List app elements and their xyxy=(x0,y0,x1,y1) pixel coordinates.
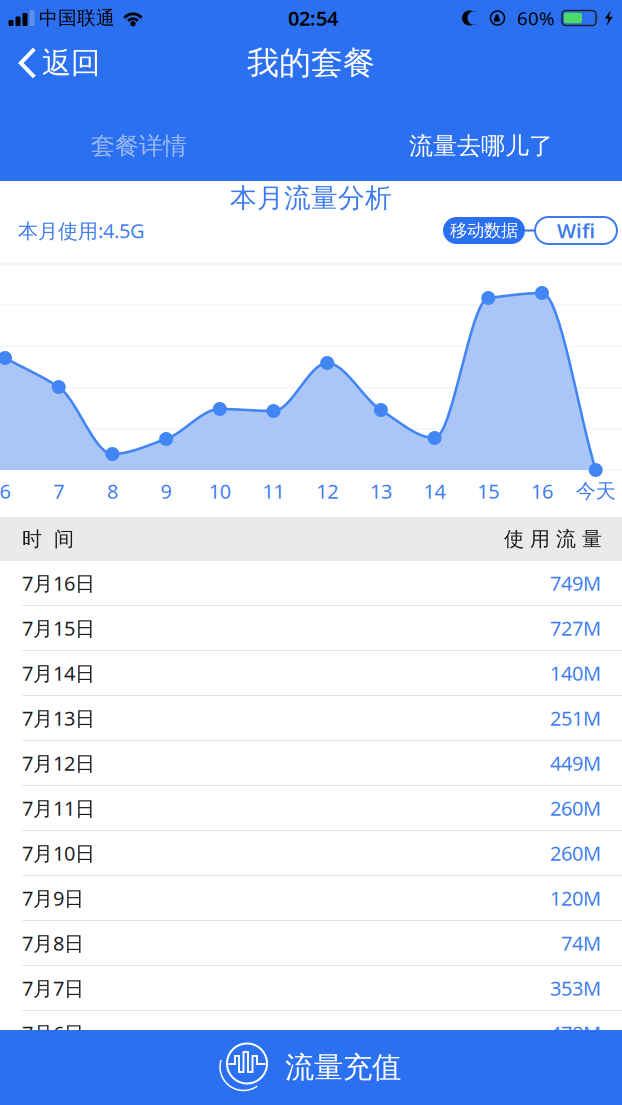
staticText: 流量充值 xyxy=(285,1049,401,1085)
staticText: 7月14日 xyxy=(22,660,95,686)
staticText: Wifi xyxy=(557,217,595,244)
staticText: 本月使用:4.5G xyxy=(18,217,145,244)
staticText: 8 xyxy=(107,478,118,504)
staticText: 02:54 xyxy=(288,5,338,31)
staticText: 15 xyxy=(477,478,499,504)
staticText: 251M xyxy=(550,705,601,731)
button[interactable]: 7月12日 xyxy=(0,741,622,786)
staticText: 13 xyxy=(370,478,392,504)
staticText: 我的套餐 xyxy=(247,43,375,83)
button[interactable]: 返回 xyxy=(0,36,114,90)
staticText: 7月9日 xyxy=(22,885,84,911)
staticText: 449M xyxy=(550,750,601,776)
staticText: 260M xyxy=(550,840,601,866)
staticText: 时 间 xyxy=(22,527,74,551)
staticText: 7月11日 xyxy=(22,795,95,821)
button[interactable]: 流量充值 xyxy=(0,1030,622,1105)
staticText: 7月13日 xyxy=(22,705,95,731)
staticText: 流量去哪儿了 xyxy=(409,131,553,161)
staticText: 中国联通 xyxy=(39,6,115,29)
staticText: 9 xyxy=(161,478,172,504)
staticText: 7月12日 xyxy=(22,750,95,776)
staticText: 10 xyxy=(209,478,231,504)
staticText: 260M xyxy=(550,795,601,821)
staticText: 478M xyxy=(550,1020,601,1046)
staticText: 60% xyxy=(517,6,555,30)
staticText: 移动数据 xyxy=(450,220,518,241)
button[interactable]: 7月14日 xyxy=(0,651,622,696)
button[interactable]: 套餐详情 xyxy=(0,120,278,172)
staticText: 749M xyxy=(550,570,601,596)
staticText: 7月6日 xyxy=(22,1020,84,1046)
button[interactable]: 移动数据 xyxy=(443,217,525,244)
button[interactable]: Wifi xyxy=(535,217,617,244)
staticText: 353M xyxy=(550,975,601,1001)
staticText: 返回 xyxy=(42,45,100,81)
staticText: 7月8日 xyxy=(22,930,84,956)
staticText: 140M xyxy=(550,660,601,686)
staticText: 7月10日 xyxy=(22,840,95,866)
button[interactable]: 7月16日 xyxy=(0,561,622,606)
button[interactable]: 7月10日 xyxy=(0,831,622,876)
staticText: 12 xyxy=(316,478,338,504)
button[interactable]: 7月13日 xyxy=(0,696,622,741)
staticText: 7 xyxy=(53,478,64,504)
button[interactable]: 7月9日 xyxy=(0,876,622,921)
button[interactable]: 7月6日 xyxy=(0,1011,622,1056)
staticText: 6 xyxy=(0,478,10,504)
staticText: 16 xyxy=(531,478,553,504)
staticText: 7月7日 xyxy=(22,975,84,1001)
staticText: 14 xyxy=(424,478,446,504)
staticText: 120M xyxy=(550,885,601,911)
staticText: 11 xyxy=(262,478,284,504)
staticText: 今天 xyxy=(576,479,616,503)
button[interactable]: 流量去哪儿了 xyxy=(341,120,621,172)
staticText: 74M xyxy=(561,930,601,956)
button[interactable]: 7月5日 xyxy=(0,1056,622,1101)
button[interactable]: 7月7日 xyxy=(0,966,622,1011)
button[interactable]: 7月8日 xyxy=(0,921,622,966)
button[interactable]: 7月15日 xyxy=(0,606,622,651)
staticText: 7月15日 xyxy=(22,615,95,641)
staticText: 727M xyxy=(550,615,601,641)
button[interactable]: 7月11日 xyxy=(0,786,622,831)
staticText: 套餐详情 xyxy=(91,131,187,161)
staticText: 使 用 流 量 xyxy=(504,527,602,551)
staticText: 7月16日 xyxy=(22,570,95,596)
staticText: 本月流量分析 xyxy=(230,182,392,214)
